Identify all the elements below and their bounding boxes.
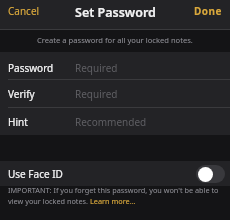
staticText: Password	[8, 61, 54, 75]
staticText: view your locked notes.	[8, 196, 90, 206]
staticText: Hint	[8, 115, 28, 129]
staticText: Verify	[8, 87, 35, 101]
button[interactable]: Verify	[0, 80, 230, 107]
staticText: Required	[75, 87, 118, 101]
button[interactable]: Password	[0, 52, 230, 79]
staticText: Learn more...	[90, 196, 136, 206]
button[interactable]: Cancel	[0, 4, 46, 18]
button[interactable]	[196, 165, 225, 183]
staticText: Use Face ID	[8, 167, 63, 181]
staticText: Required	[75, 61, 118, 75]
button[interactable]: Hint	[0, 108, 230, 135]
staticText: Create a password for all your locked no…	[37, 35, 193, 45]
button[interactable]: Learn more...	[90, 196, 136, 206]
staticText: Cancel	[8, 4, 40, 18]
button[interactable]: Use Face ID	[0, 161, 230, 186]
staticText: Recommended	[75, 115, 147, 129]
staticText: Done	[194, 4, 223, 18]
button[interactable]: Done	[188, 4, 230, 18]
staticText: IMPORTANT: If you forget this password, …	[8, 185, 219, 195]
staticText: Set Password	[75, 4, 156, 21]
